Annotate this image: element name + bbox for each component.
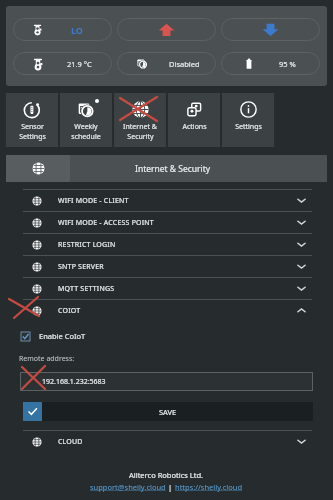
staticText: Enable CoIoT [39,331,86,341]
button[interactable]: Weekly [60,93,112,147]
staticText: CLOUD [58,437,83,447]
button[interactable]: Sensor [6,93,58,147]
staticText: Disabled [169,59,200,69]
button[interactable]: WIFI MODE - ACCESS POINT [0,212,333,233]
staticText: WIFI MODE - CLIENT [58,196,129,206]
staticText: WIFI MODE - ACCESS POINT [58,218,154,228]
button[interactable]: SNTP SERVER [0,256,333,277]
staticText: 21.9 °C [67,59,92,69]
staticText: Internet & [123,122,157,132]
button[interactable]: MQTT SETTINGS [0,278,333,299]
staticText: 95 % [279,59,296,69]
button[interactable]: Battery [221,52,320,75]
staticText: RESTRICT LOGIN [58,240,116,250]
button[interactable]: Settings [222,93,274,147]
button[interactable]: Temperature [13,52,112,75]
staticText: MQTT SETTINGS [58,284,115,294]
staticText: Allterco Robotics Ltd. [129,470,204,480]
button[interactable]: COIOT [0,300,333,321]
button[interactable]: SAVE [23,402,313,421]
button[interactable]: Enable CoIoT [0,331,333,341]
button[interactable]: Decrease [221,18,320,41]
staticText: schedule [71,132,101,142]
staticText: Settings [235,122,262,132]
staticText: Settings [19,132,46,142]
staticText: Security [127,132,154,142]
staticText: Remote address: [19,354,75,364]
button[interactable]: Internet & Security [6,155,327,182]
button[interactable]: support@shelly.cloud [90,482,166,492]
staticText: Weekly [74,122,98,132]
button[interactable]: Schedule [117,52,216,75]
staticText: 192.168.1.232:5683 [42,377,106,387]
button[interactable]: Internet & [114,93,166,147]
button[interactable]: Increase [117,18,216,41]
button[interactable]: https://shelly.cloud [175,482,243,492]
button[interactable]: CLOUD [0,431,333,452]
staticText: Actions [182,122,207,132]
staticText: LO [71,24,83,36]
staticText: | [166,482,175,492]
button[interactable]: Mode [13,18,112,41]
button[interactable]: Actions [168,93,220,147]
staticText: SAVE [159,407,177,417]
button[interactable]: RESTRICT LOGIN [0,234,333,255]
staticText: Internet & Security [135,163,211,175]
button[interactable]: WIFI MODE - CLIENT [0,190,333,211]
staticText: SNTP SERVER [58,262,104,272]
staticText: COIOT [58,306,81,316]
staticText: Sensor [21,122,44,132]
